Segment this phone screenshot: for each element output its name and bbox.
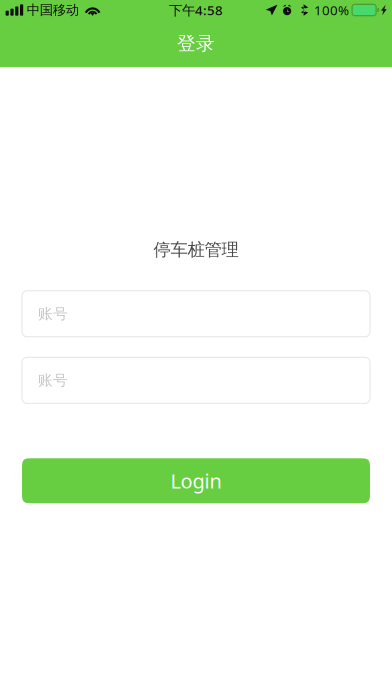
staticText: 登录 [177, 32, 215, 55]
staticText: 停车桩管理 [153, 239, 238, 260]
staticText: 下午4:58 [169, 1, 223, 19]
staticText: 账号 [38, 371, 68, 389]
button[interactable]: 账号 [22, 291, 370, 337]
staticText: 100% [314, 1, 349, 19]
staticText: Login [170, 467, 221, 494]
staticText: 中国移动 [27, 2, 79, 18]
button[interactable]: 密码 [22, 357, 370, 403]
button[interactable]: Login [22, 458, 370, 503]
staticText: 账号 [38, 305, 68, 323]
